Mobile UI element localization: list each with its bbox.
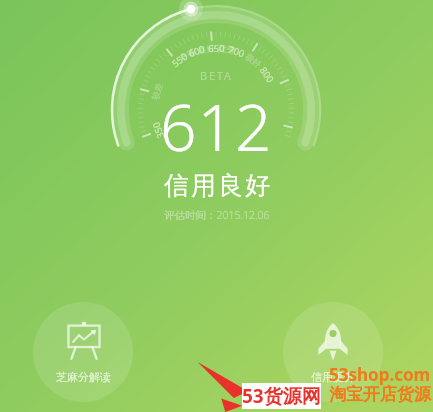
staticText: 优秀 bbox=[217, 43, 236, 56]
staticText: BETA bbox=[200, 68, 233, 83]
staticText: 极好 bbox=[243, 51, 263, 70]
staticText: 550 bbox=[169, 50, 190, 70]
staticText: 信用良好 bbox=[163, 170, 271, 201]
button[interactable]: 芝麻分解读 bbox=[33, 302, 133, 402]
staticText: 较差 bbox=[150, 82, 165, 101]
staticText: 612 bbox=[160, 83, 273, 170]
staticText: 800 bbox=[257, 64, 277, 85]
staticText: 淘宝开店货源 bbox=[329, 384, 431, 405]
staticText: 53shop.com bbox=[329, 363, 431, 386]
staticText: 600 bbox=[186, 42, 207, 60]
staticText: 350 bbox=[149, 120, 167, 140]
staticText: 评估时间：2015.12.06 bbox=[164, 208, 270, 222]
staticText: 中等 bbox=[178, 46, 198, 64]
staticText: 信用提升 bbox=[311, 370, 355, 384]
staticText: 700 bbox=[226, 43, 246, 60]
button[interactable]: 信用提升 bbox=[283, 302, 383, 402]
staticText: 芝麻分解读 bbox=[56, 370, 111, 384]
staticText: 53货源网 bbox=[242, 383, 321, 409]
staticText: 650 bbox=[208, 42, 225, 55]
staticText: 良好 bbox=[197, 43, 216, 56]
